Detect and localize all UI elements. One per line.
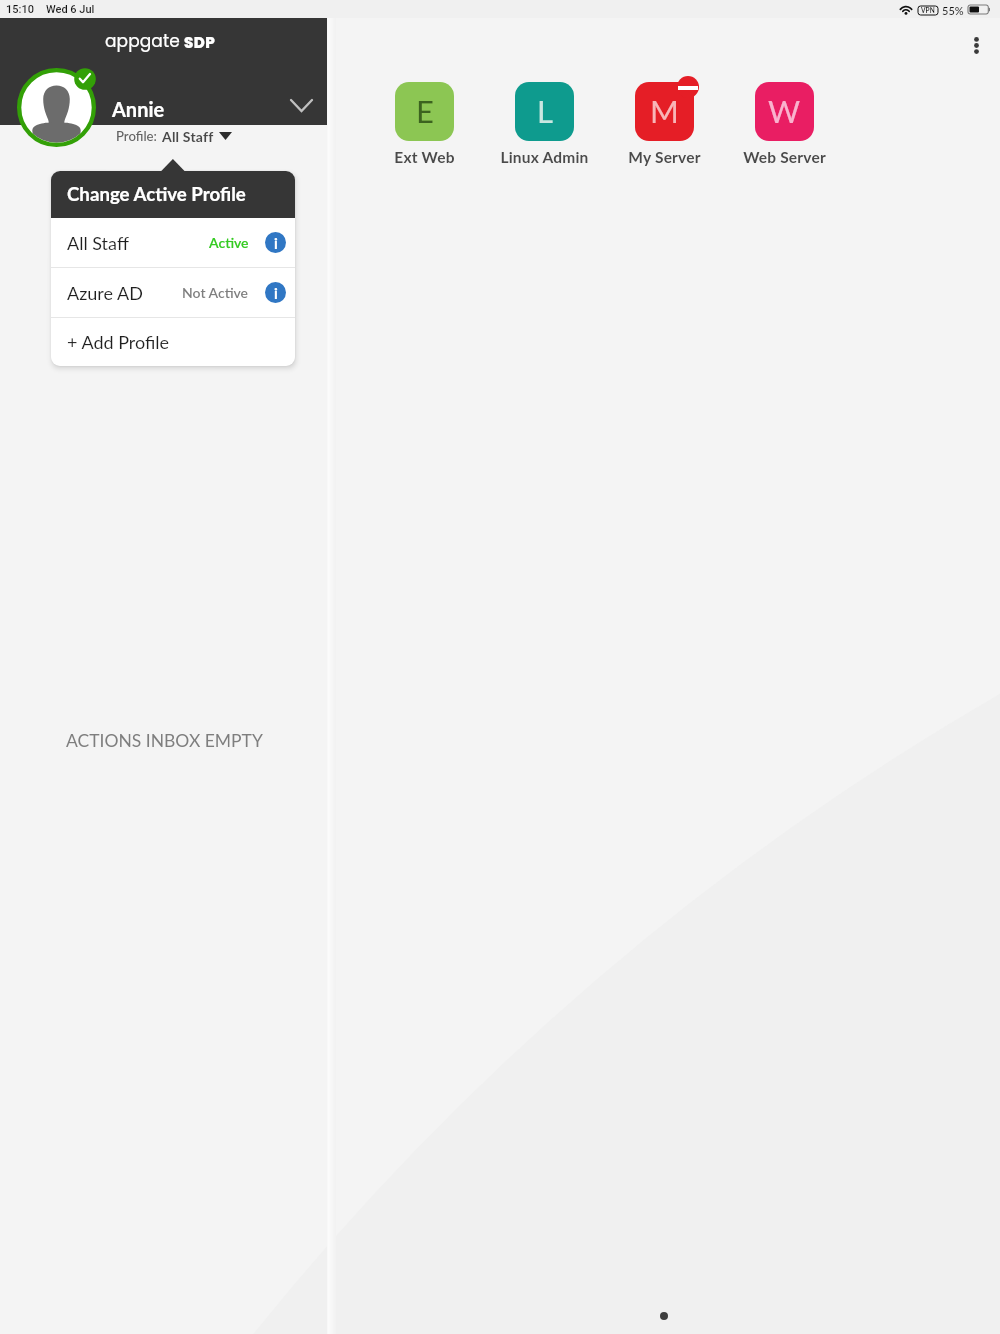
staticText: L <box>537 92 553 129</box>
staticText: All Staff <box>162 128 214 145</box>
staticText: E <box>416 92 434 129</box>
staticText: All Staff <box>67 232 129 254</box>
button[interactable]: Account avatar <box>17 68 101 152</box>
staticText: M <box>650 92 679 129</box>
staticText: Change Active Profile <box>67 183 246 205</box>
button[interactable]: All Staff <box>51 218 295 267</box>
staticText: Web Server <box>743 148 826 167</box>
staticText: Wed 6 Jul <box>46 3 95 16</box>
staticText: appgate <box>105 29 180 53</box>
staticText: My Server <box>628 148 701 167</box>
button[interactable]: More options <box>951 21 999 69</box>
staticText: Linux Admin <box>500 148 589 167</box>
button[interactable]: Profile: <box>116 126 232 146</box>
button[interactable]: Profile info <box>265 282 286 303</box>
staticText: VPN <box>921 7 935 15</box>
button[interactable]: Profile info <box>265 232 286 253</box>
staticText: W <box>768 92 801 129</box>
button[interactable]: L <box>484 82 604 167</box>
button[interactable]: Azure AD <box>51 268 295 317</box>
staticText: 15:10 <box>6 3 34 16</box>
staticText: Azure AD <box>67 282 143 304</box>
staticText: i <box>274 234 278 252</box>
button[interactable]: Expand account <box>279 83 323 127</box>
staticText: Active <box>209 234 249 251</box>
button[interactable]: E <box>364 82 484 167</box>
staticText: SDP <box>184 32 216 53</box>
staticText: Profile: <box>116 128 157 144</box>
staticText: 55% <box>942 4 964 17</box>
staticText: ACTIONS INBOX EMPTY <box>66 730 263 751</box>
staticText: Not Active <box>182 284 249 301</box>
staticText: Ext Web <box>394 148 455 167</box>
staticText: + Add Profile <box>67 331 170 353</box>
staticText: Annie <box>112 97 165 121</box>
button[interactable]: + Add Profile <box>51 318 295 366</box>
button[interactable]: W <box>724 82 844 167</box>
staticText: i <box>274 284 278 302</box>
button[interactable]: M <box>604 82 724 167</box>
